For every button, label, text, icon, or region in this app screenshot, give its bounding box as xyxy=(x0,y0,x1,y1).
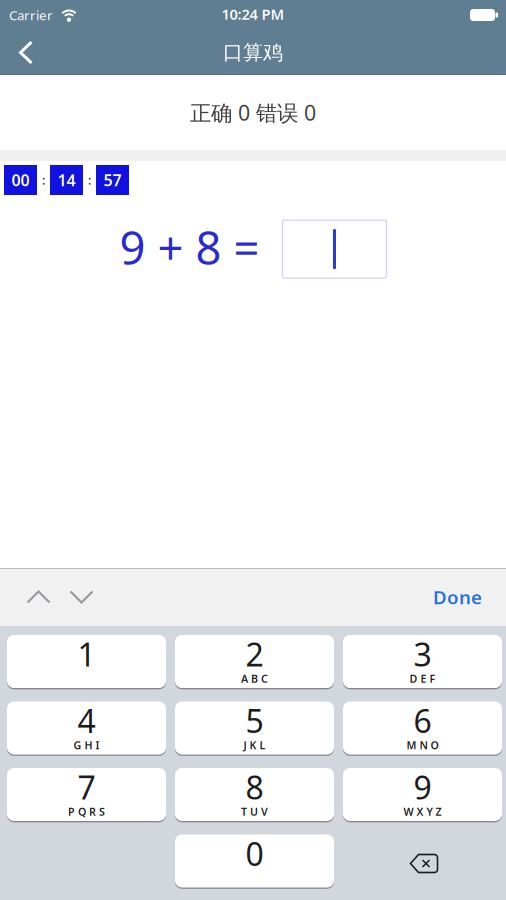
button[interactable]: 1 xyxy=(7,635,166,688)
staticText: 4 xyxy=(77,699,95,742)
button[interactable]: 0 xyxy=(175,834,334,887)
button[interactable]: Back xyxy=(0,30,33,74)
button[interactable]: 3 xyxy=(343,635,502,688)
button[interactable]: 9 xyxy=(343,768,502,821)
staticText: WXYZ xyxy=(403,804,441,819)
staticText: 3 xyxy=(413,633,431,675)
button[interactable]: Delete xyxy=(343,834,502,887)
staticText: 14 xyxy=(57,169,75,191)
button[interactable]: 7 xyxy=(7,768,166,821)
staticText: 9 xyxy=(413,766,431,808)
staticText: : xyxy=(88,172,91,188)
button[interactable]: 5 xyxy=(175,701,334,754)
staticText: : xyxy=(42,172,45,188)
staticText: JKL xyxy=(243,738,265,752)
staticText: 8 xyxy=(245,766,263,808)
staticText: 1 xyxy=(77,633,95,675)
staticText: DEF xyxy=(409,671,435,686)
staticText: PQRS xyxy=(68,804,105,819)
button[interactable]: Previous field xyxy=(26,590,51,604)
staticText: GHI xyxy=(73,738,99,752)
button[interactable]: 8 xyxy=(175,768,334,821)
staticText: 57 xyxy=(103,169,121,191)
staticText: TUV xyxy=(241,804,268,819)
staticText: 00 xyxy=(11,169,29,191)
button[interactable]: 4 xyxy=(7,701,166,754)
button[interactable]: 6 xyxy=(343,701,502,754)
staticText: 6 xyxy=(413,699,431,742)
staticText: Carrier xyxy=(9,6,53,24)
button[interactable]: Done xyxy=(433,585,482,609)
staticText: 9 + 8 = xyxy=(119,217,259,277)
staticText: 0 xyxy=(245,832,263,875)
staticText: Done xyxy=(433,585,482,609)
staticText: 7 xyxy=(77,766,95,808)
staticText: 5 xyxy=(245,699,263,742)
staticText: 口算鸡 xyxy=(223,40,283,65)
staticText: ABC xyxy=(241,671,268,686)
staticText: 2 xyxy=(245,633,263,675)
staticText: MNO xyxy=(406,738,438,752)
staticText: 10:24 PM xyxy=(221,4,284,24)
button[interactable]: Next field xyxy=(69,590,94,604)
staticText: 正确 0 错误 0 xyxy=(190,98,316,127)
button[interactable]: 2 xyxy=(175,635,334,688)
